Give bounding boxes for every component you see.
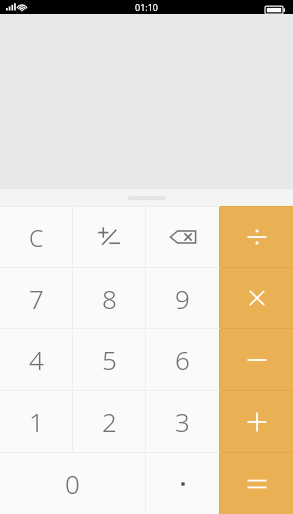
- button[interactable]: Subtract: [220, 329, 293, 390]
- staticText: 01:10: [135, 1, 159, 13]
- button[interactable]: Add: [220, 391, 293, 452]
- staticText: 5: [102, 342, 117, 377]
- button[interactable]: 2: [73, 391, 145, 452]
- button[interactable]: Divide: [220, 207, 293, 267]
- staticText: 8: [102, 281, 117, 316]
- button[interactable]: Equals: [220, 453, 293, 514]
- button[interactable]: 0: [0, 453, 145, 514]
- staticText: 2: [102, 404, 117, 439]
- staticText: 0: [65, 466, 80, 501]
- staticText: 6: [175, 342, 190, 377]
- staticText: 3: [175, 404, 190, 439]
- staticText: 1: [29, 404, 44, 439]
- button[interactable]: Backspace: [146, 207, 219, 267]
- button[interactable]: Plus minus: [73, 207, 145, 267]
- button[interactable]: 4: [0, 329, 72, 390]
- staticText: 7: [29, 281, 44, 316]
- button[interactable]: 6: [146, 329, 219, 390]
- button[interactable]: 9: [146, 268, 219, 328]
- button[interactable]: 7: [0, 268, 72, 328]
- button[interactable]: Decimal point: [146, 453, 219, 514]
- button[interactable]: Clear: [0, 207, 72, 267]
- button[interactable]: 3: [146, 391, 219, 452]
- staticText: 4: [29, 342, 44, 377]
- staticText: C: [29, 222, 44, 253]
- button[interactable]: 1: [0, 391, 72, 452]
- button[interactable]: 8: [73, 268, 145, 328]
- staticText: 9: [175, 281, 190, 316]
- button[interactable]: Multiply: [220, 268, 293, 328]
- button[interactable]: 5: [73, 329, 145, 390]
